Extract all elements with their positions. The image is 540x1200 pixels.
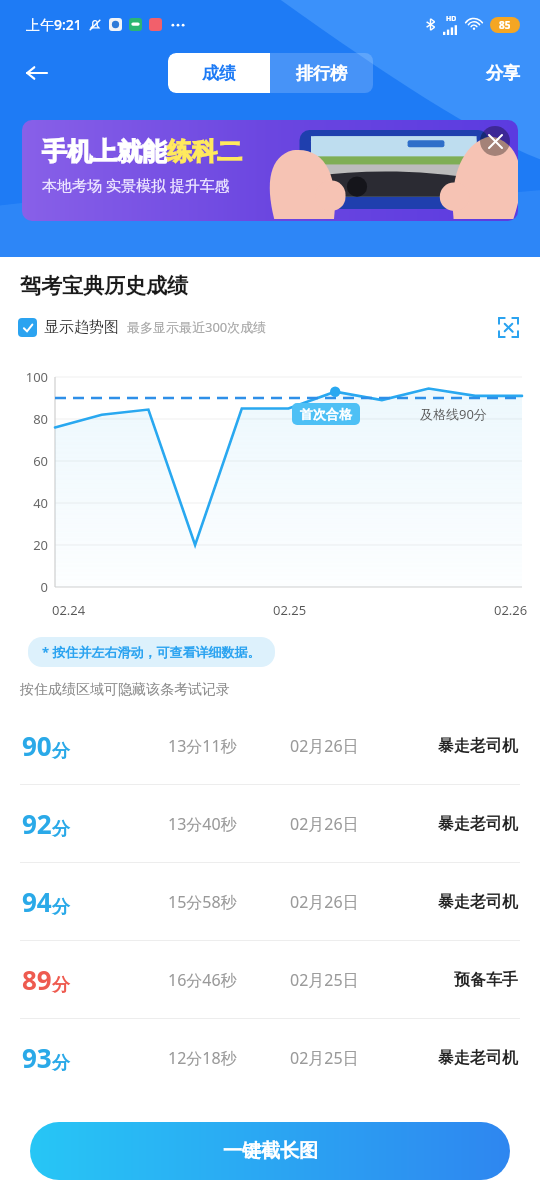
staticText: 02月26日: [290, 891, 359, 913]
staticText: 02月26日: [290, 813, 359, 835]
staticText: 暴走老司机: [438, 736, 518, 756]
staticText: 上午9:21: [26, 15, 82, 34]
button[interactable]: 89: [0, 941, 540, 1018]
button[interactable]: 分享: [478, 57, 528, 90]
button[interactable]: 93: [0, 1019, 540, 1096]
staticText: 02月25日: [290, 969, 359, 991]
staticText: 排行榜: [296, 63, 347, 84]
staticText: 85: [499, 18, 511, 32]
staticText: 40: [0, 494, 48, 512]
staticText: 02.26: [494, 601, 528, 619]
staticText: 02.25: [273, 601, 307, 619]
staticText: 分: [52, 896, 70, 919]
staticText: 02月25日: [290, 1047, 359, 1069]
button[interactable]: 94: [0, 863, 540, 940]
staticText: 0: [0, 578, 48, 596]
staticText: 90: [22, 728, 52, 763]
button[interactable]: * 按住并左右滑动，可查看详细数据。: [28, 637, 275, 667]
staticText: 分: [52, 1052, 70, 1075]
staticText: 最多显示最近300次成绩: [127, 318, 267, 336]
staticText: 一键截长图: [223, 1139, 318, 1163]
staticText: 分: [52, 740, 70, 763]
staticText: * 按住并左右滑动，可查看详细数据。: [42, 643, 261, 661]
button[interactable]: 一键截长图: [30, 1122, 510, 1180]
staticText: 93: [22, 1040, 52, 1075]
staticText: 60: [0, 452, 48, 470]
staticText: 02月26日: [290, 735, 359, 757]
staticText: 暴走老司机: [438, 892, 518, 912]
staticText: 首次合格: [300, 406, 352, 422]
staticText: 100: [0, 368, 48, 386]
staticText: HD: [446, 14, 457, 24]
staticText: 92: [22, 806, 52, 841]
button[interactable]: 90: [0, 707, 540, 784]
staticText: 手机上就能: [42, 136, 167, 167]
staticText: 分: [52, 818, 70, 841]
staticText: 分享: [486, 63, 520, 84]
staticText: 15分58秒: [168, 891, 290, 913]
button[interactable]: 显示趋势图: [18, 318, 119, 337]
button[interactable]: Close banner: [480, 126, 510, 156]
button[interactable]: 成绩: [168, 53, 270, 93]
staticText: 13分40秒: [168, 813, 290, 835]
staticText: 及格线90分: [420, 405, 487, 423]
staticText: 16分46秒: [168, 969, 290, 991]
staticText: 20: [0, 536, 48, 554]
staticText: 暴走老司机: [438, 1048, 518, 1068]
staticText: 练科二: [167, 136, 242, 167]
staticText: 成绩: [202, 63, 236, 84]
staticText: 本地考场 实景模拟 提升车感: [42, 175, 230, 195]
button[interactable]: 排行榜: [270, 53, 373, 93]
staticText: 显示趋势图: [44, 318, 119, 337]
staticText: 暴走老司机: [438, 814, 518, 834]
staticText: 预备车手: [454, 970, 518, 990]
staticText: 94: [22, 884, 52, 919]
staticText: 按住成绩区域可隐藏该条考试记录: [20, 681, 230, 699]
staticText: 分: [52, 974, 70, 997]
button[interactable]: Back: [14, 51, 58, 95]
staticText: 02.24: [52, 601, 86, 619]
staticText: 89: [22, 962, 52, 997]
button[interactable]: Fullscreen chart: [492, 311, 524, 343]
staticText: 13分11秒: [168, 735, 290, 757]
staticText: 80: [0, 410, 48, 428]
button[interactable]: 手机上就能: [22, 120, 518, 221]
button[interactable]: 92: [0, 785, 540, 862]
staticText: 12分18秒: [168, 1047, 290, 1069]
staticText: 驾考宝典历史成绩: [20, 273, 188, 299]
